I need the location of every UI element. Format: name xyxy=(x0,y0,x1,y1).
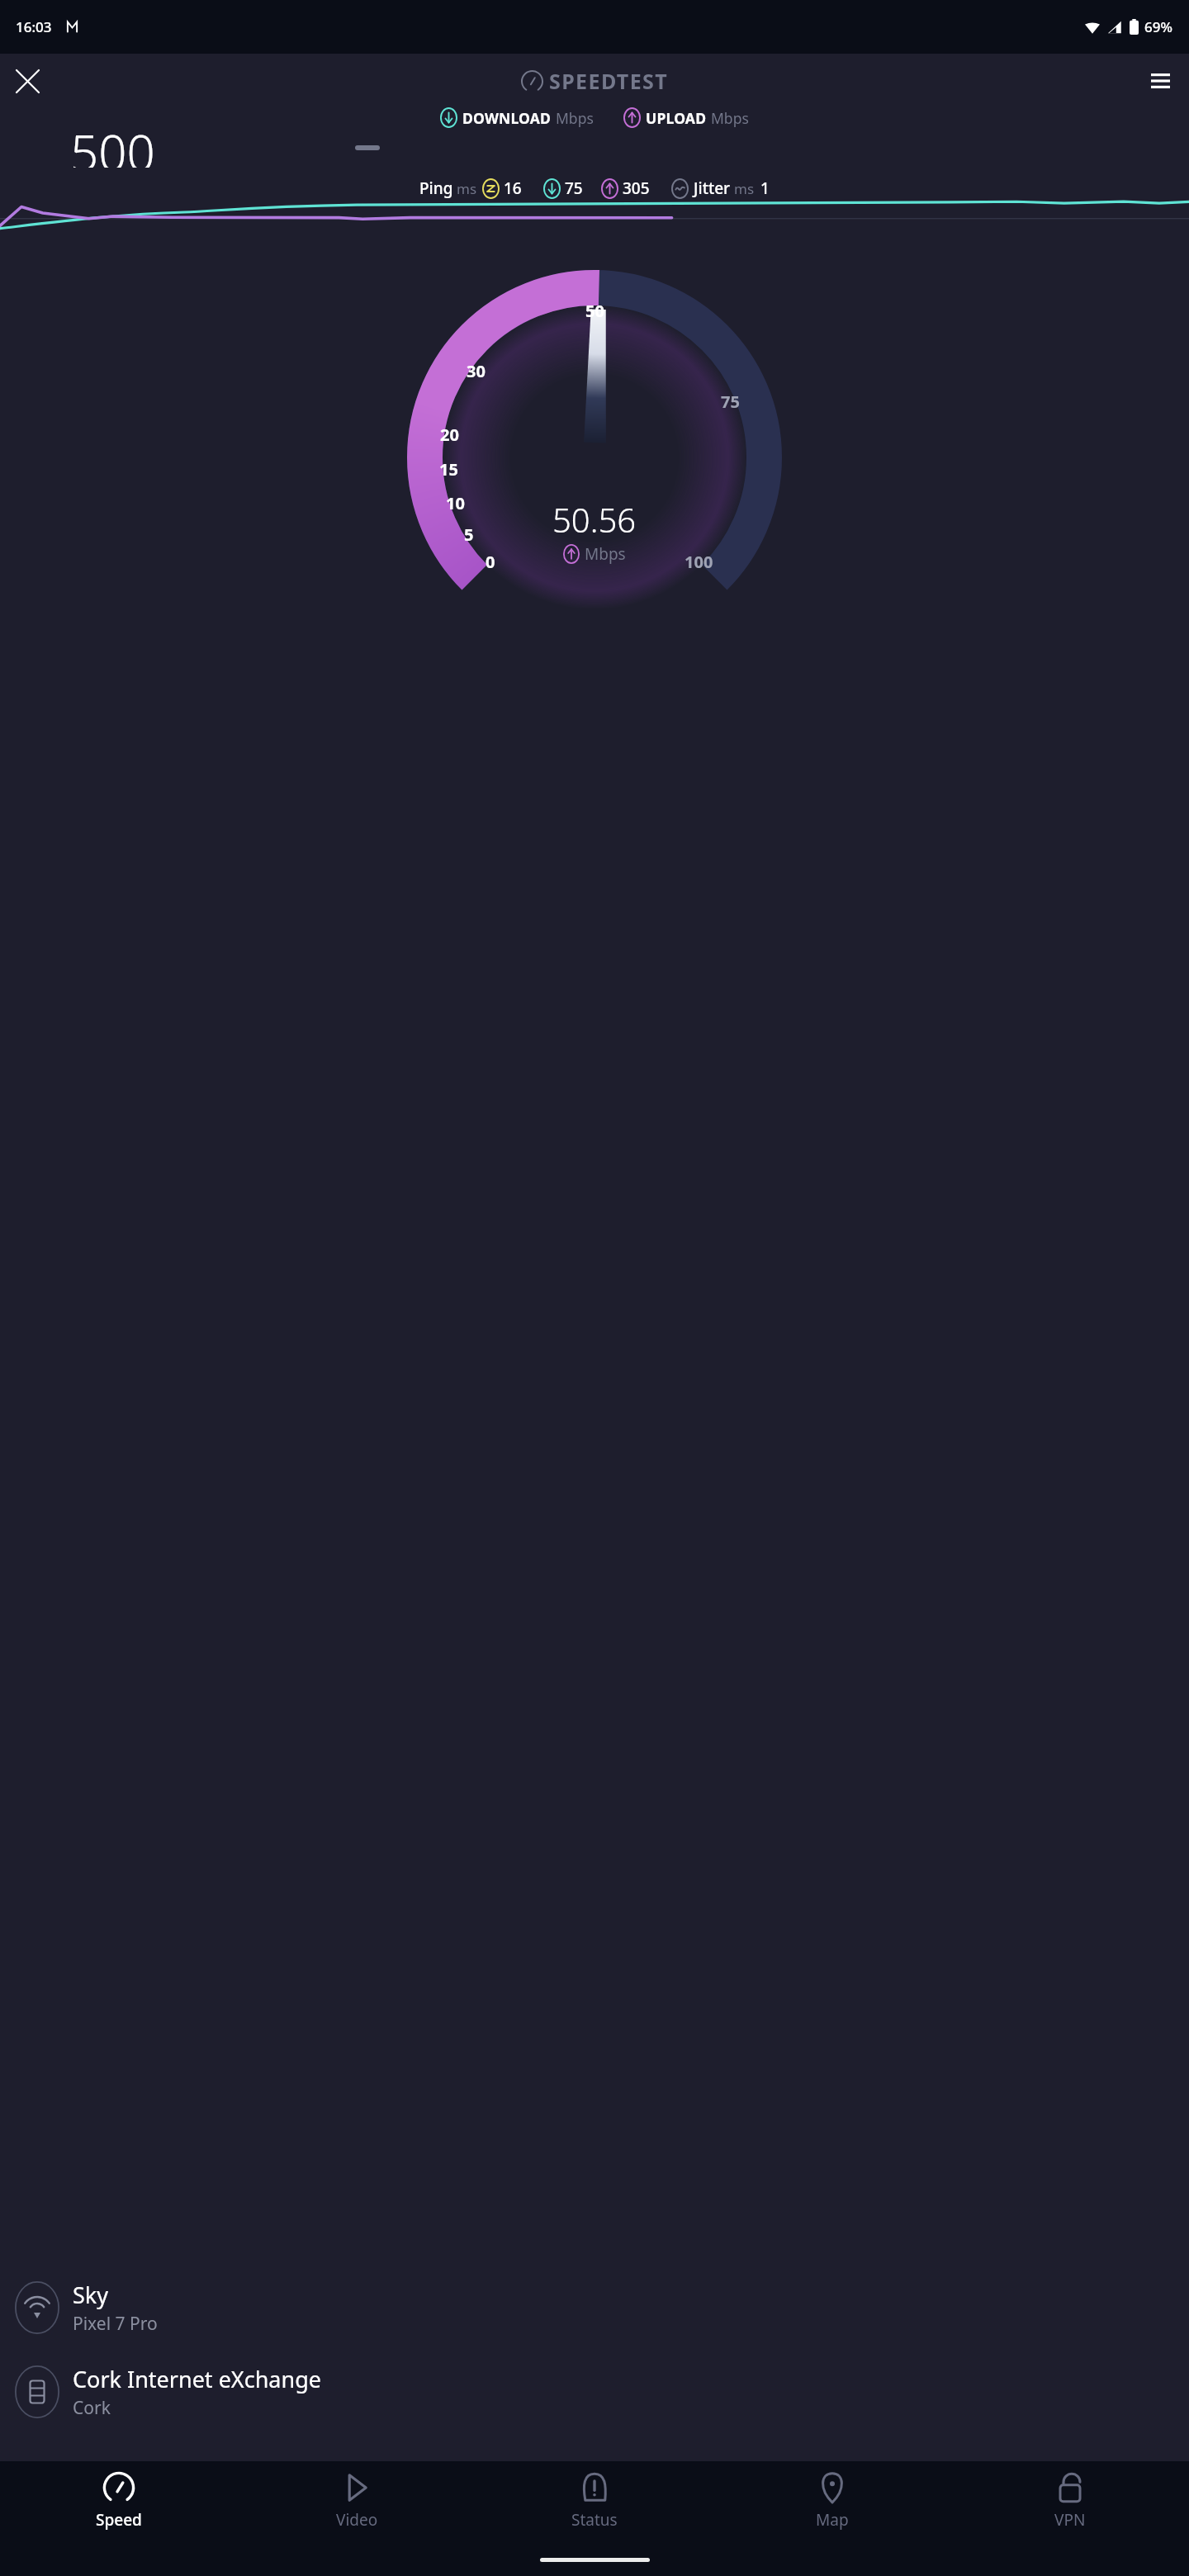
staticText: ms xyxy=(734,179,755,198)
button[interactable]: Video xyxy=(238,2461,476,2544)
staticText: Mbps xyxy=(711,108,749,128)
staticText: Cork Internet eXchange xyxy=(73,2364,321,2394)
staticText: 16:03 xyxy=(16,17,52,36)
staticText: 16 xyxy=(504,178,522,199)
staticText: VPN xyxy=(1054,2509,1086,2531)
button[interactable]: Sky xyxy=(15,2276,1189,2339)
staticText: 30 xyxy=(467,360,486,382)
button[interactable]: Menu xyxy=(1139,60,1181,102)
staticText: Cork xyxy=(73,2396,111,2420)
button[interactable]: Cork Internet eXchange xyxy=(15,2361,1189,2423)
staticText: 10 xyxy=(446,492,465,514)
staticText: ms xyxy=(457,179,477,198)
staticText: 1 xyxy=(760,178,770,199)
staticText: Mbps xyxy=(556,108,594,128)
staticText: Status xyxy=(571,2509,618,2531)
button[interactable]: VPN xyxy=(951,2461,1189,2544)
staticText: Jitter xyxy=(694,178,731,199)
staticText: SPEEDTEST xyxy=(549,67,669,95)
staticText: 100 xyxy=(685,551,713,573)
staticText: 15 xyxy=(439,458,458,481)
staticText: Speed xyxy=(96,2509,142,2531)
staticText: 5 xyxy=(464,523,474,546)
button[interactable]: Status xyxy=(476,2461,713,2544)
staticText: Video xyxy=(336,2509,378,2531)
staticText: DOWNLOAD xyxy=(462,108,552,128)
staticText: Pixel 7 Pro xyxy=(73,2312,158,2336)
staticText: Ping xyxy=(419,178,453,199)
staticText: 50 xyxy=(585,300,604,322)
staticText: 500 xyxy=(70,118,155,168)
staticText: 75 xyxy=(565,178,583,199)
button[interactable]: Close xyxy=(7,60,48,102)
button[interactable]: Speed xyxy=(0,2461,238,2544)
staticText: Mbps xyxy=(585,543,626,565)
staticText: Sky xyxy=(73,2280,109,2310)
button[interactable]: Map xyxy=(713,2461,951,2544)
staticText: UPLOAD xyxy=(646,108,707,128)
staticText: 20 xyxy=(440,424,459,446)
staticText: 75 xyxy=(721,391,740,413)
staticText: 0 xyxy=(486,551,495,573)
staticText: 50.56 xyxy=(552,497,637,542)
staticText: 305 xyxy=(623,178,650,199)
staticText: 69% xyxy=(1144,17,1172,36)
staticText: Map xyxy=(816,2509,849,2531)
